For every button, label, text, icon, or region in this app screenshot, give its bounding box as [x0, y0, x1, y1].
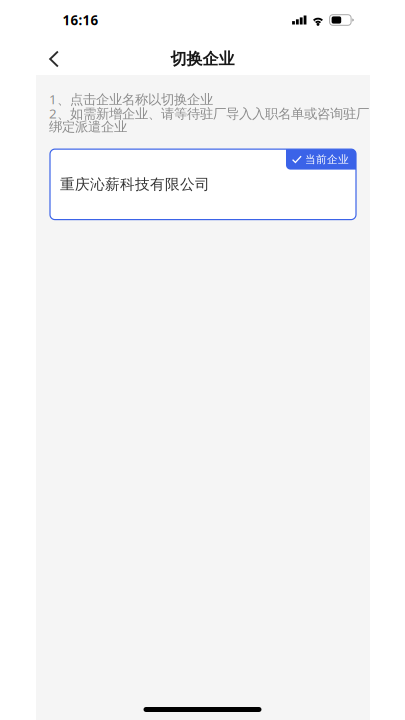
staticText: 1、点击企业名称以切换企业 2、如需新增企业、请等待驻厂导入入职名单或咨询驻厂绑…: [49, 90, 369, 135]
staticText: 16:16: [62, 11, 98, 29]
button[interactable]: 返回: [33, 40, 75, 78]
staticText: 切换企业: [170, 49, 234, 69]
button[interactable]: 重庆沁薪科技有限公司: [50, 149, 356, 220]
staticText: 重庆沁薪科技有限公司: [60, 175, 210, 194]
staticText: 当前企业: [305, 153, 349, 166]
